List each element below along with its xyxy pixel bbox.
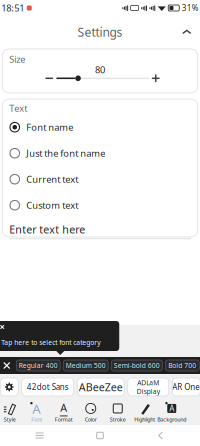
staticText: Medium 500	[66, 361, 106, 370]
staticText: Style	[4, 416, 16, 423]
button[interactable]: AR One	[172, 378, 200, 396]
button[interactable]: Recent apps	[23, 425, 57, 445]
staticText: AR One	[172, 382, 200, 392]
staticText: Regular 400	[19, 361, 58, 370]
staticText: Semi-bold 600	[114, 361, 160, 370]
button[interactable]: Collapse settings	[177, 22, 197, 42]
button[interactable]: Increase size	[149, 73, 163, 84]
button[interactable]: ABeeZee	[77, 378, 124, 396]
staticText: Settings	[77, 24, 122, 40]
button[interactable]: Dismiss tip	[0, 322, 7, 332]
staticText: A	[32, 400, 41, 417]
staticText: ABeeZee	[79, 380, 123, 394]
staticText: Color	[85, 416, 97, 423]
button[interactable]: Regular 400	[16, 360, 60, 371]
button[interactable]: Bold 700	[165, 360, 199, 371]
staticText: 80	[95, 63, 105, 76]
staticText: Size	[9, 53, 25, 65]
staticText: Just the font name	[26, 147, 105, 159]
staticText: A	[60, 400, 67, 415]
button[interactable]: Current text	[2, 166, 198, 192]
staticText: Text	[9, 102, 27, 114]
button[interactable]: Medium 500	[63, 360, 108, 371]
staticText: A	[169, 403, 174, 414]
staticText: Font	[31, 416, 42, 423]
button[interactable]: 42dot Sans	[22, 378, 74, 396]
staticText: 31%	[182, 3, 199, 13]
button[interactable]: A	[23, 401, 50, 423]
staticText: Stroke	[110, 416, 126, 423]
button[interactable]: A	[50, 401, 77, 423]
button[interactable]: Decrease size	[42, 73, 56, 84]
button[interactable]: Close font weights	[0, 358, 13, 372]
button[interactable]: Back	[143, 425, 177, 445]
button[interactable]: Highlight	[131, 401, 158, 423]
staticText: 18:51	[1, 2, 24, 14]
staticText: Tap here to select font category	[1, 338, 100, 347]
button[interactable]: Just the font name	[2, 140, 198, 166]
button[interactable]: Custom text	[2, 192, 198, 218]
button[interactable]: Semi-bold 600	[111, 360, 162, 371]
staticText: Current text	[26, 173, 78, 185]
button[interactable]: Home	[83, 425, 117, 445]
staticText: Bold 700	[168, 361, 196, 370]
staticText: Custom text	[26, 199, 78, 211]
staticText: Format	[55, 416, 73, 423]
button[interactable]: Font settings	[0, 378, 18, 396]
staticText: Display	[137, 387, 160, 396]
button[interactable]: ADLaM	[128, 378, 169, 396]
staticText: ADLaM	[137, 378, 159, 387]
staticText: Font name	[26, 121, 73, 133]
button[interactable]: A	[158, 401, 185, 423]
button[interactable]: Font name	[2, 114, 198, 140]
staticText: Enter text here	[9, 222, 85, 236]
button[interactable]: Color	[77, 401, 104, 423]
button[interactable]: Stroke	[104, 401, 131, 423]
staticText: 42dot Sans	[27, 382, 69, 392]
button[interactable]: Style	[0, 401, 23, 423]
staticText: Highlight	[134, 416, 155, 423]
staticText: Background	[157, 416, 186, 423]
